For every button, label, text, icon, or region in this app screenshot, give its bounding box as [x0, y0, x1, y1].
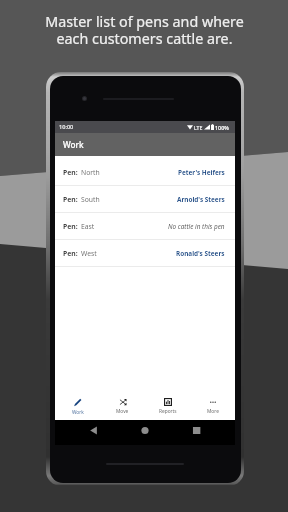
staticText: West: [81, 249, 97, 258]
button[interactable]: Pen:: [55, 159, 235, 185]
staticText: 10:00: [59, 123, 74, 131]
other: Work: [73, 398, 82, 407]
staticText: Ronald's Steers: [176, 249, 225, 258]
staticText: Work: [72, 409, 84, 416]
staticText: Master list of pens and where each custo…: [45, 12, 244, 49]
staticText: Pen:: [63, 168, 78, 177]
button[interactable]: Pen:: [55, 213, 235, 239]
button[interactable]: Move: [100, 393, 145, 420]
staticText: Work: [63, 139, 84, 150]
staticText: Reports: [159, 408, 177, 415]
staticText: 100%: [215, 124, 229, 131]
staticText: No cattle in this pen: [168, 222, 225, 231]
staticText: Pen:: [63, 222, 78, 231]
staticText: East: [81, 222, 95, 231]
staticText: Move: [116, 408, 129, 415]
staticText: LTE: [194, 124, 203, 131]
button[interactable]: More: [190, 393, 235, 420]
button[interactable]: Pen:: [55, 186, 235, 212]
other: System navigation: [55, 420, 235, 445]
staticText: Pen:: [63, 195, 78, 204]
staticText: Pen:: [63, 249, 78, 258]
staticText: North: [81, 168, 100, 177]
staticText: More: [207, 408, 219, 415]
staticText: South: [81, 195, 100, 204]
button[interactable]: Work: [55, 393, 100, 420]
button[interactable]: Pen:: [55, 240, 235, 266]
other: More: [209, 398, 217, 406]
other: Reports: [164, 398, 172, 406]
staticText: Arnold's Steers: [177, 195, 225, 204]
button[interactable]: Reports: [145, 393, 190, 420]
other: Move: [119, 398, 127, 406]
staticText: Peter's Heifers: [178, 168, 225, 177]
